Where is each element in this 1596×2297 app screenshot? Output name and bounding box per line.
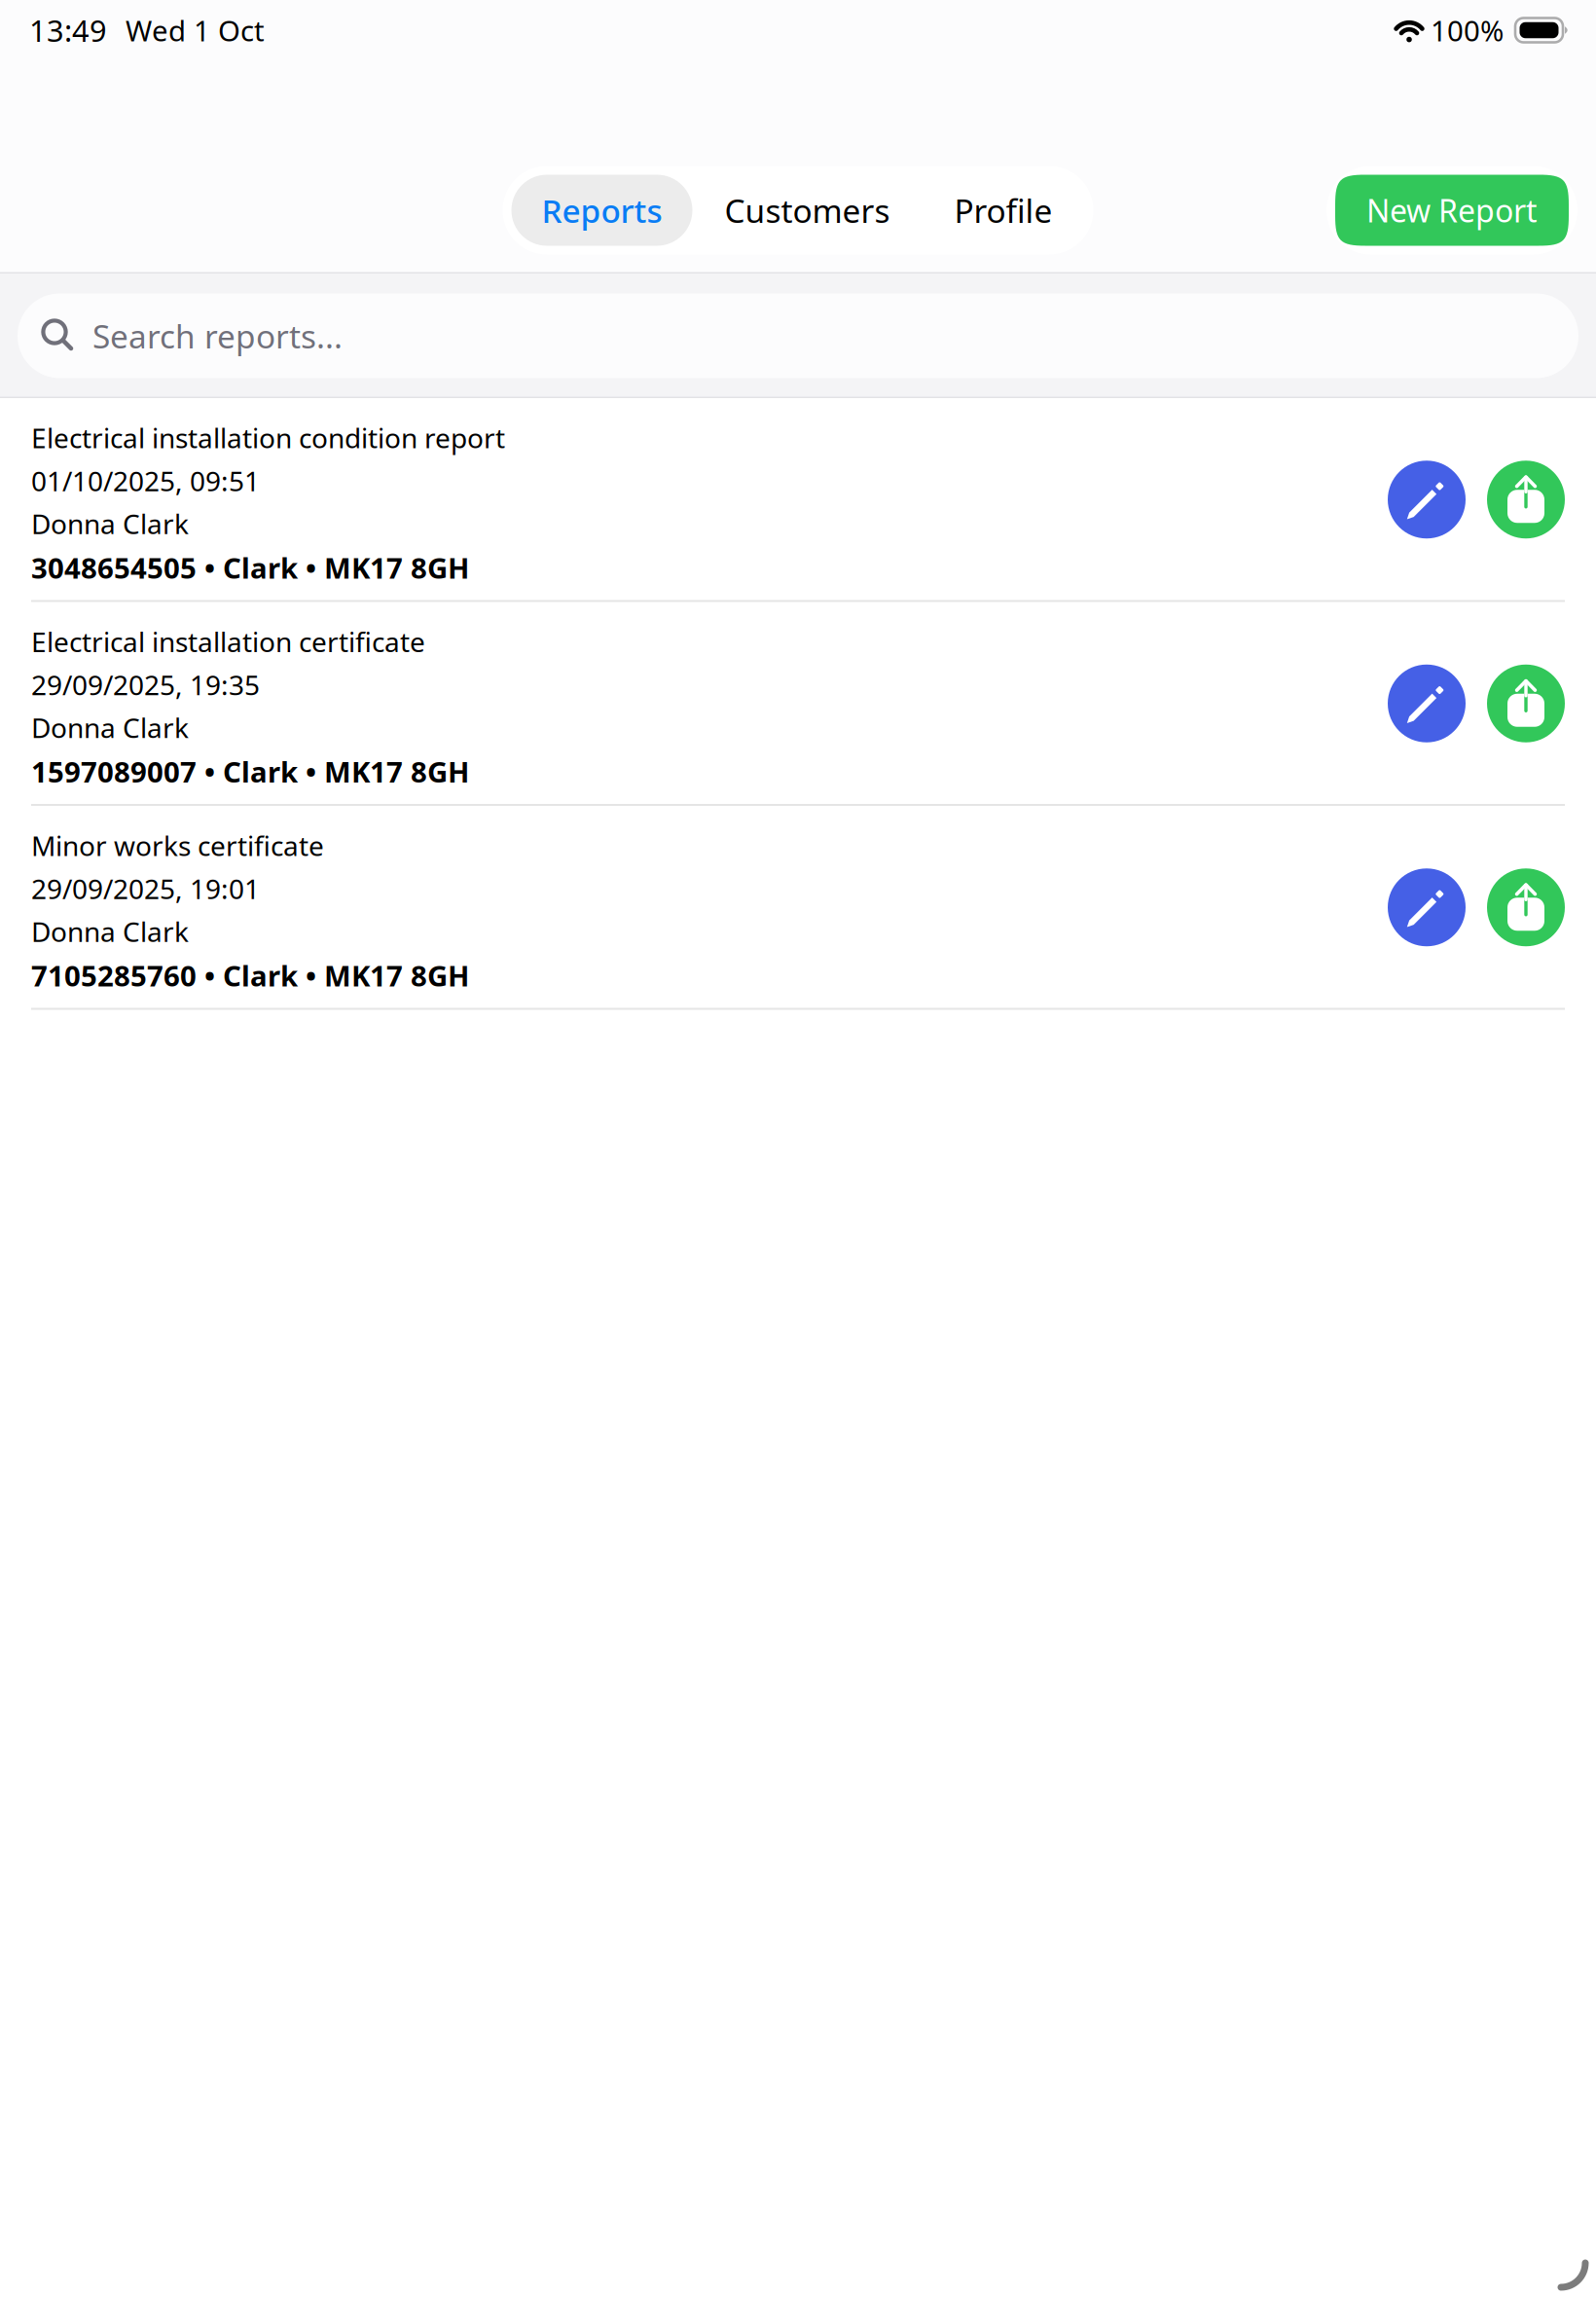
button[interactable]: Electrical installation condition report <box>31 419 505 586</box>
staticText: 1597089007 • Clark • MK17 8GH <box>31 752 469 790</box>
staticText: 100% <box>1431 11 1504 49</box>
staticText: Electrical installation certificate <box>31 623 425 660</box>
staticText: Search reports... <box>92 314 343 357</box>
button[interactable]: Electrical installation certificate <box>31 623 469 790</box>
staticText: Donna Clark <box>31 913 189 950</box>
staticText: Donna Clark <box>31 709 189 746</box>
staticText: Donna Clark <box>31 506 189 542</box>
staticText: Customers <box>725 189 890 232</box>
button[interactable]: Edit report <box>1388 665 1466 742</box>
button[interactable]: Share report <box>1487 665 1565 742</box>
staticText: 01/10/2025, 09:51 <box>31 463 260 499</box>
staticText: 7105285760 • Clark • MK17 8GH <box>31 956 469 994</box>
button[interactable]: Customers <box>692 175 922 246</box>
button[interactable]: Reports <box>511 175 692 246</box>
staticText: Electrical installation condition report <box>31 419 505 456</box>
staticText: Wed 1 Oct <box>126 11 265 49</box>
button[interactable]: Share report <box>1487 868 1565 946</box>
button[interactable]: Search reports... <box>18 293 1578 378</box>
button[interactable]: Share report <box>1487 461 1565 539</box>
staticText: New Report <box>1366 190 1538 231</box>
staticText: Minor works certificate <box>31 827 324 864</box>
button[interactable]: New Report <box>1335 175 1569 246</box>
button[interactable]: Minor works certificate <box>31 827 469 994</box>
staticText: 29/09/2025, 19:35 <box>31 666 260 703</box>
staticText: 3048654505 • Clark • MK17 8GH <box>31 548 469 586</box>
button[interactable]: Edit report <box>1388 461 1466 539</box>
button[interactable]: Profile <box>922 175 1085 246</box>
staticText: Profile <box>954 189 1052 232</box>
staticText: 29/09/2025, 19:01 <box>31 870 260 907</box>
button[interactable]: Edit report <box>1388 868 1466 946</box>
staticText: Reports <box>542 189 662 232</box>
staticText: 13:49 <box>29 10 107 50</box>
